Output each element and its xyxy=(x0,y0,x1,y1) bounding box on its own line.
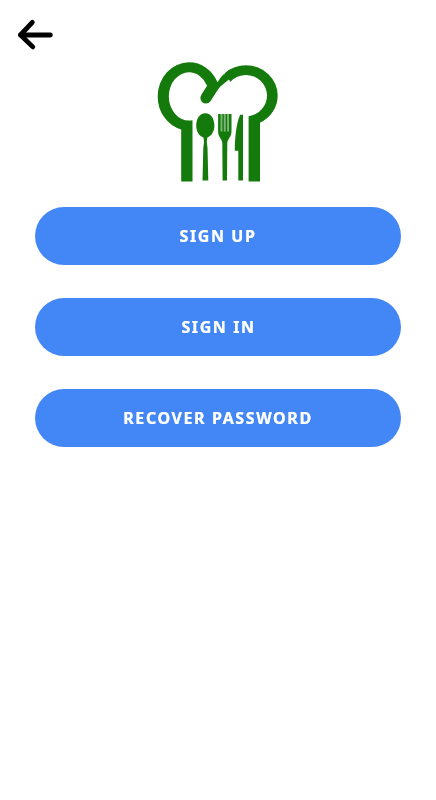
staticText: SIGN UP xyxy=(179,225,257,247)
button[interactable]: SIGN UP xyxy=(35,207,401,265)
staticText: SIGN IN xyxy=(181,316,256,338)
staticText: RECOVER PASSWORD xyxy=(123,407,313,429)
button[interactable]: Back xyxy=(4,5,64,65)
button[interactable]: SIGN IN xyxy=(35,298,401,356)
button[interactable]: RECOVER PASSWORD xyxy=(35,389,401,447)
